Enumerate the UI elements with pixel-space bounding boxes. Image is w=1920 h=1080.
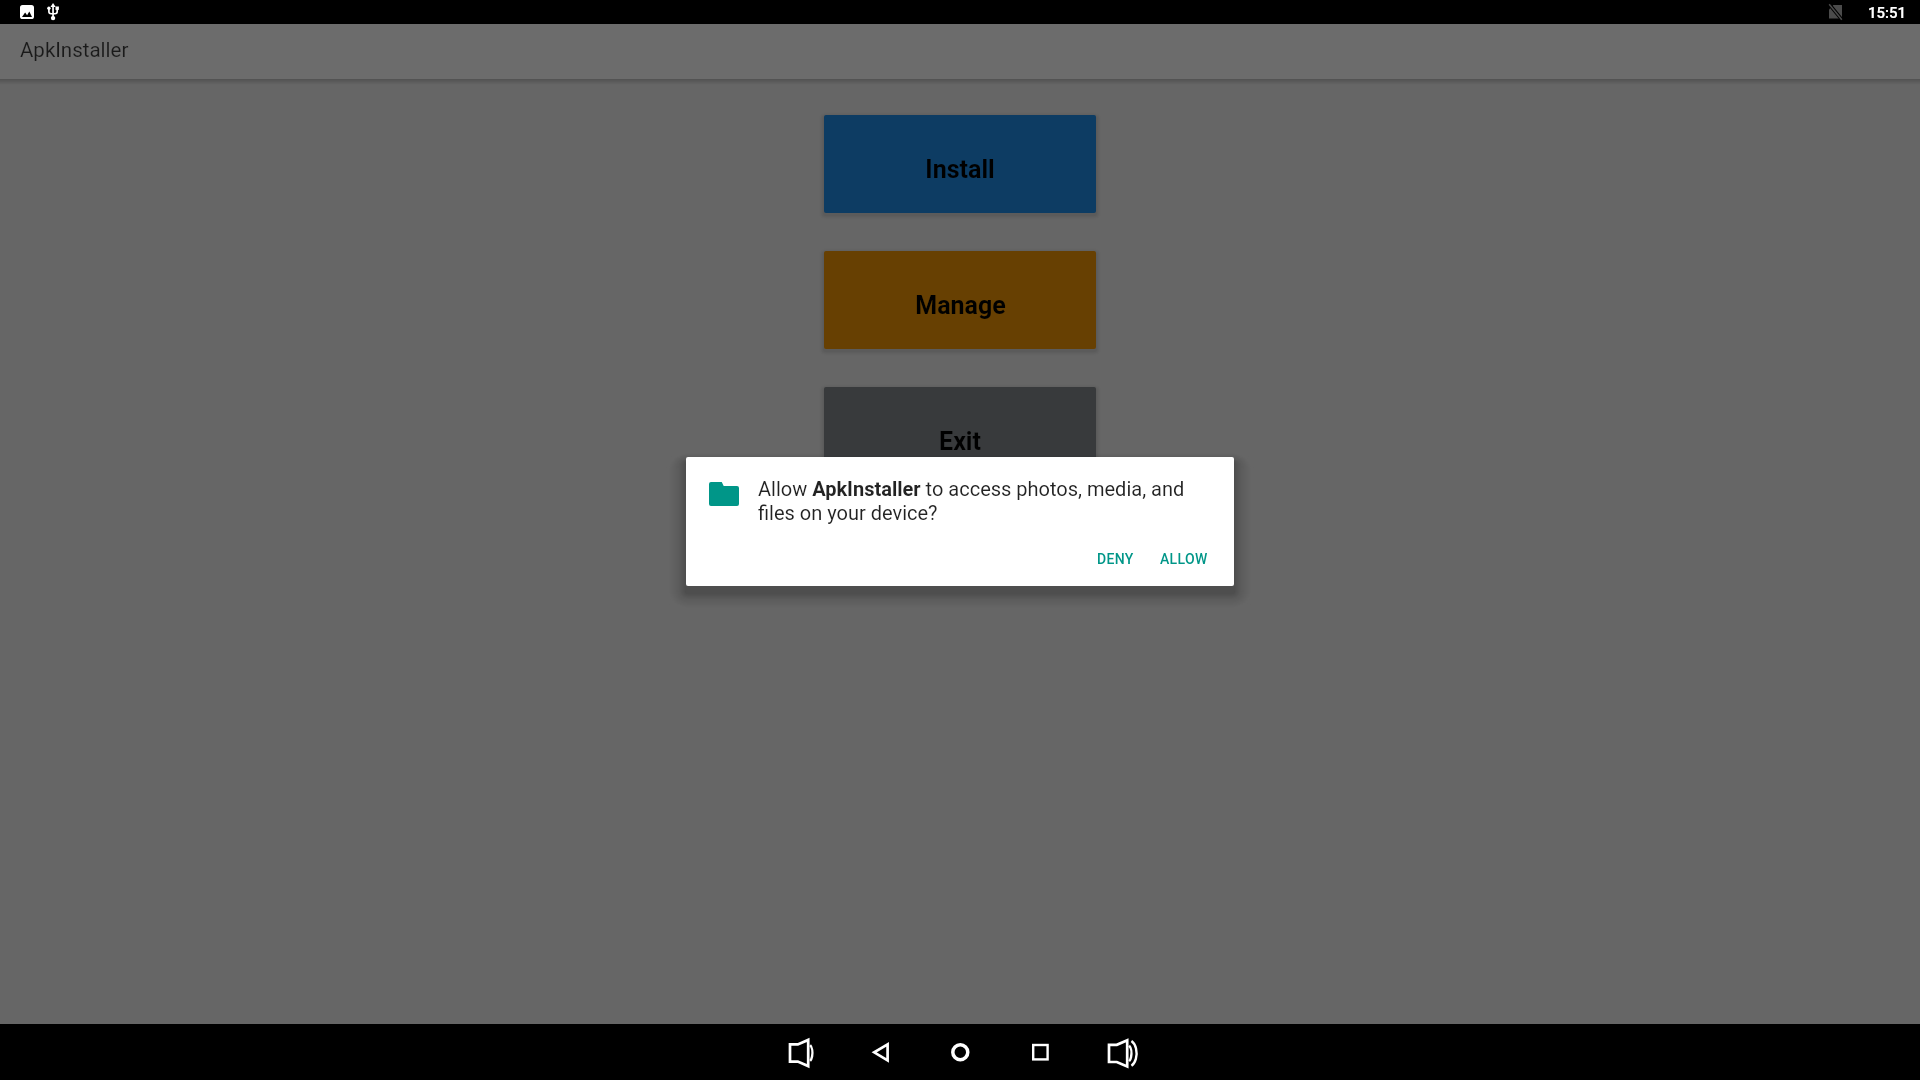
staticText: Exit — [939, 427, 981, 456]
staticText: ApkInstaller — [20, 38, 129, 62]
button[interactable]: Volume down — [772, 1024, 828, 1080]
button[interactable]: ALLOW — [1152, 541, 1216, 577]
button[interactable]: Manage — [824, 251, 1096, 349]
button[interactable]: Home — [933, 1024, 989, 1080]
staticText: Manage — [915, 291, 1006, 320]
button[interactable]: Install — [824, 115, 1096, 213]
staticText: Install — [925, 155, 995, 184]
button[interactable]: Recent apps — [1014, 1024, 1070, 1080]
staticText: ALLOW — [1160, 551, 1208, 567]
staticText: DENY — [1097, 551, 1134, 567]
staticText: 15:51 — [1868, 4, 1907, 22]
button[interactable]: DENY — [1089, 541, 1142, 577]
button[interactable]: Volume up — [1091, 1024, 1147, 1080]
button[interactable]: Back — [854, 1024, 910, 1080]
button[interactable]: Exit — [824, 387, 1096, 485]
staticText: Allow ApkInstaller to access photos, med… — [758, 477, 1190, 525]
